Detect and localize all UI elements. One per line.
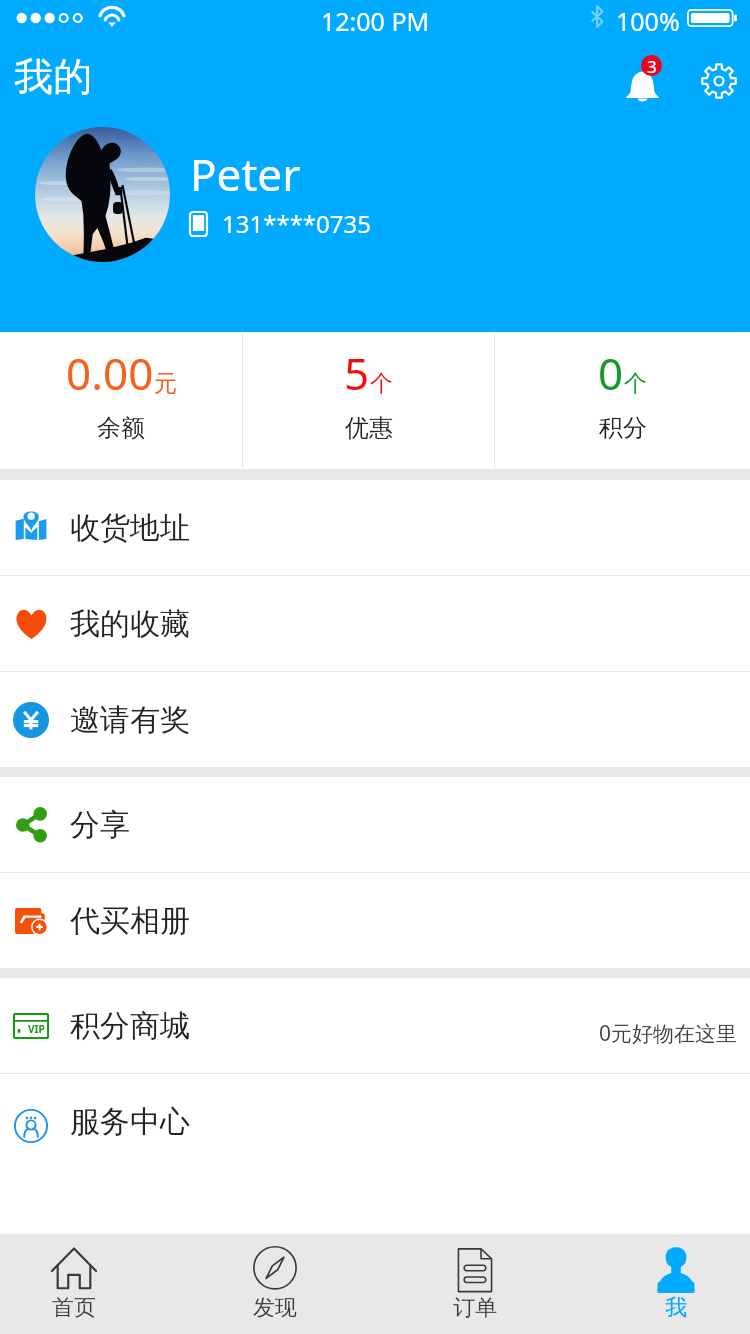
button[interactable]: 0 [495, 332, 750, 469]
staticText: 积分商城 [70, 1007, 190, 1045]
staticText: 服务中心 [70, 1103, 190, 1141]
staticText: 分享 [70, 806, 130, 844]
button[interactable]: Notifications [618, 53, 670, 105]
staticText: 余额 [97, 413, 145, 443]
staticText: 收货地址 [70, 509, 190, 547]
staticText: 100% [616, 4, 680, 38]
staticText: 我的 [14, 52, 92, 101]
staticText: 邀请有奖 [70, 701, 190, 739]
staticText: 元 [154, 369, 177, 398]
staticText: 订单 [453, 1294, 497, 1322]
button[interactable]: VIP [0, 978, 750, 1073]
staticText: 我的收藏 [70, 605, 190, 643]
button[interactable]: 服务中心 [0, 1074, 750, 1169]
button[interactable]: 邀请有奖 [0, 672, 750, 767]
button[interactable]: 我的收藏 [0, 576, 750, 671]
staticText: 131****0735 [222, 207, 371, 240]
staticText: 0元好物在这里 [599, 1019, 738, 1048]
staticText: 优惠 [345, 413, 393, 443]
staticText: 12:00 PM [321, 4, 430, 38]
button[interactable]: Peter [0, 126, 750, 262]
staticText: 0.00 [66, 343, 154, 403]
staticText: Peter [190, 144, 301, 204]
staticText: 我 [665, 1294, 687, 1322]
button[interactable]: 首页 [0, 1234, 148, 1334]
staticText: 个 [624, 369, 647, 398]
staticText: 5 [344, 343, 370, 403]
staticText: 个 [370, 369, 393, 398]
staticText: 代买相册 [70, 902, 190, 940]
button[interactable]: 收货地址 [0, 480, 750, 575]
button[interactable]: Settings [696, 58, 742, 104]
staticText: 积分 [599, 413, 647, 443]
staticText: VIP [28, 1022, 45, 1036]
staticText: 首页 [52, 1294, 96, 1322]
button[interactable]: 我 [602, 1234, 750, 1334]
staticText: 3 [647, 55, 657, 76]
button[interactable]: 0.00 [0, 332, 242, 469]
button[interactable]: 5 [243, 332, 494, 469]
button[interactable]: 发现 [201, 1234, 349, 1334]
staticText: 发现 [253, 1294, 297, 1322]
staticText: 0 [598, 343, 624, 403]
button[interactable]: 订单 [401, 1234, 549, 1334]
button[interactable]: 分享 [0, 777, 750, 872]
button[interactable]: 代买相册 [0, 873, 750, 968]
